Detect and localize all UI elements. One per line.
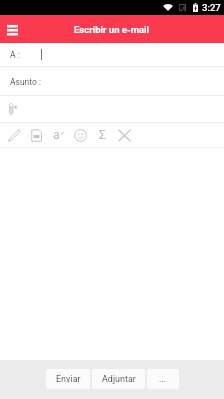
staticText: Σ [99, 128, 106, 142]
staticText: Asunto : [10, 77, 42, 87]
button[interactable]: A : [0, 43, 224, 66]
staticText: a [53, 128, 60, 142]
button[interactable]: Asunto : [0, 67, 224, 95]
button[interactable]: Escribir [3, 123, 25, 147]
button[interactable]: Enviar [46, 369, 90, 389]
button[interactable]: Fuente [47, 123, 69, 147]
staticText: ... [159, 374, 167, 385]
button[interactable]: Documento [25, 123, 47, 147]
button[interactable]: ... [147, 369, 179, 389]
button[interactable]: Cerrar [113, 123, 135, 147]
button[interactable]: Emoticonos [69, 123, 91, 147]
staticText: A : [10, 50, 20, 60]
button[interactable]: Adjuntar [92, 369, 145, 389]
staticText: 3:27 [202, 2, 221, 13]
staticText: Escribir un e-mail [74, 24, 150, 35]
button[interactable]: Adjuntar archivo [0, 96, 224, 122]
button[interactable]: Menu [0, 15, 24, 43]
staticText: Adjuntar [102, 374, 136, 385]
button[interactable]: Sumatorio [91, 123, 113, 147]
staticText: Enviar [56, 374, 81, 385]
